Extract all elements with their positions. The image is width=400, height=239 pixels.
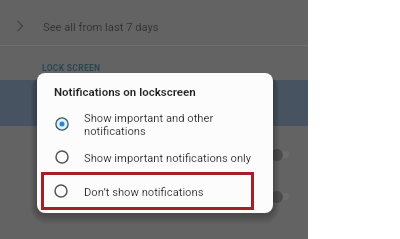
button[interactable]: Show important and other notifications — [37, 107, 273, 141]
staticText: Notifications on lockscreen — [54, 85, 196, 98]
button[interactable]: Don’t show notifications — [41, 172, 254, 210]
button[interactable]: Toggle setting — [271, 190, 289, 203]
staticText: Show important and other notifications — [84, 112, 214, 138]
button[interactable]: Show important notifications only — [37, 141, 273, 175]
staticText: Show important notifications only — [84, 152, 252, 165]
staticText: LOCK SCREEN — [42, 63, 101, 73]
staticText: Don’t show notifications — [84, 186, 204, 199]
button[interactable] — [0, 80, 308, 126]
button[interactable]: Toggle setting — [271, 148, 289, 161]
button[interactable]: See all from last 7 days — [0, 0, 308, 45]
staticText: See all from last 7 days — [43, 21, 159, 34]
